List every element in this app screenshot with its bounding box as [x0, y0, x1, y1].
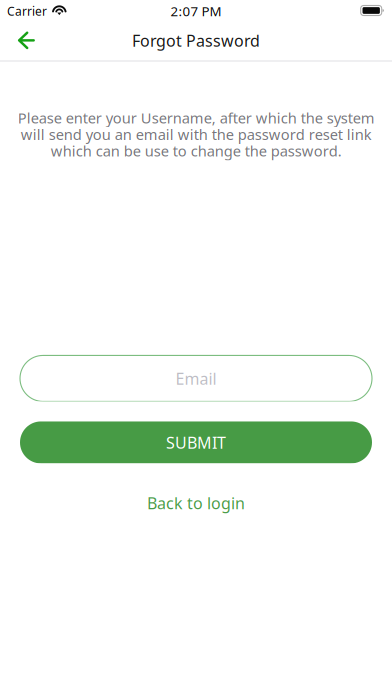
staticText: Back to login — [147, 492, 245, 514]
staticText: Carrier — [7, 3, 47, 19]
staticText: 2:07 PM — [170, 2, 221, 20]
button[interactable]: Back — [6, 22, 50, 60]
button[interactable]: SUBMIT — [0, 421, 392, 463]
staticText: Forgot Password — [132, 30, 260, 51]
button[interactable]: Back to login — [131, 484, 261, 522]
staticText: Email — [175, 368, 216, 389]
staticText: Please enter your Username, after which … — [17, 108, 374, 160]
staticText: SUBMIT — [166, 432, 226, 453]
